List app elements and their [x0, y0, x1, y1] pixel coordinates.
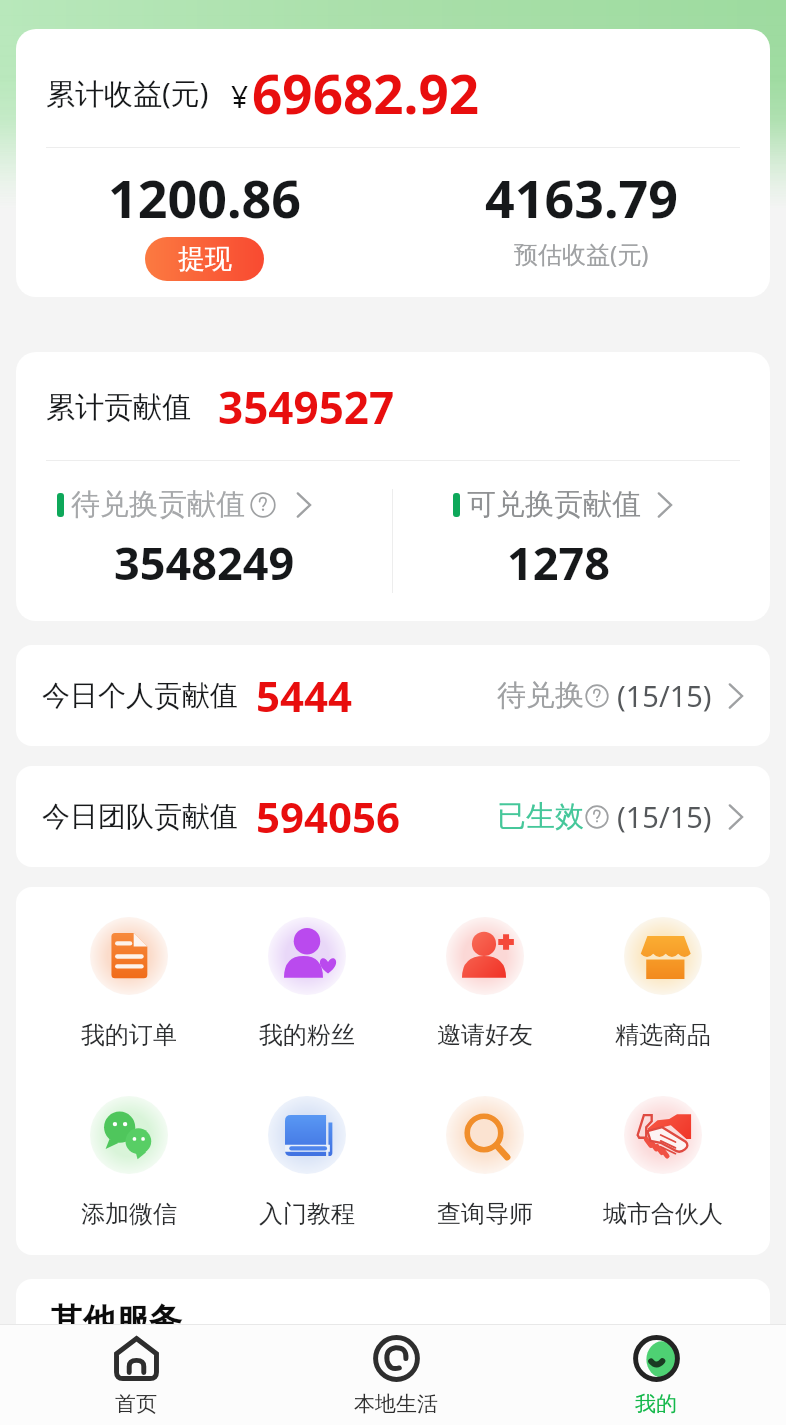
staticText: 594056 — [256, 788, 401, 845]
staticText: 3549527 — [218, 377, 395, 437]
button[interactable]: 待兑换贡献值 — [16, 461, 392, 621]
button[interactable]: 可兑换贡献值 — [393, 461, 770, 621]
button[interactable]: 提现 — [145, 237, 264, 281]
button[interactable]: 精选商品 — [574, 917, 752, 1050]
button[interactable]: 我的订单 — [39, 917, 218, 1050]
button[interactable]: 本地生活 — [266, 1325, 526, 1425]
button[interactable]: 添加微信 — [39, 1096, 218, 1229]
staticText: 城市合伙人 — [603, 1199, 723, 1229]
staticText: 我的 — [635, 1391, 677, 1417]
staticText: 4163.79 — [485, 162, 679, 233]
staticText: 今日个人贡献值 — [42, 678, 238, 713]
staticText: 首页 — [115, 1391, 157, 1417]
button[interactable]: 今日团队贡献值 — [16, 766, 770, 867]
staticText: 入门教程 — [259, 1199, 355, 1229]
staticText: 累计收益(元) — [46, 73, 209, 113]
staticText: 提现 — [178, 242, 232, 276]
staticText: 其他服务 — [50, 1300, 182, 1342]
button[interactable]: 城市合伙人 — [574, 1096, 752, 1229]
staticText: (15/15) — [617, 797, 712, 836]
button[interactable]: 入门教程 — [218, 1096, 396, 1229]
staticText: 累计贡献值 — [46, 389, 191, 426]
staticText: 添加微信 — [81, 1199, 177, 1229]
button[interactable]: 今日个人贡献值 — [16, 645, 770, 746]
staticText: 待兑换 — [497, 677, 584, 714]
staticText: 今日团队贡献值 — [42, 799, 238, 834]
staticText: 我的粉丝 — [259, 1020, 355, 1050]
staticText: 我的订单 — [81, 1020, 177, 1050]
button[interactable]: 首页 — [6, 1325, 266, 1425]
staticText: 5444 — [256, 667, 353, 724]
staticText: 预估收益(元) — [514, 237, 649, 270]
staticText: 3548249 — [114, 532, 295, 593]
staticText: 已生效 — [497, 798, 584, 835]
button[interactable]: 邀请好友 — [396, 917, 574, 1050]
staticText: ¥ — [231, 76, 249, 117]
staticText: 待兑换贡献值 — [71, 486, 245, 523]
staticText: 69682.92 — [252, 57, 480, 129]
staticText: 精选商品 — [615, 1020, 711, 1050]
staticText: (15/15) — [617, 676, 712, 715]
staticText: 本地生活 — [354, 1391, 438, 1417]
staticText: 1278 — [507, 532, 610, 593]
staticText: 邀请好友 — [437, 1020, 533, 1050]
staticText: 1200.86 — [108, 162, 302, 233]
button[interactable]: 我的 — [526, 1325, 786, 1425]
button[interactable]: 查询导师 — [396, 1096, 574, 1229]
staticText: 可兑换贡献值 — [467, 486, 641, 523]
staticText: 查询导师 — [437, 1199, 533, 1229]
button[interactable]: 我的粉丝 — [218, 917, 396, 1050]
